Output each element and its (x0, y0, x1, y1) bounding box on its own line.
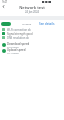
staticText: Wi-Fi connection ok (7, 28, 31, 32)
staticText: All good (22, 22, 32, 25)
staticText: Network test (0, 5, 64, 10)
staticText: 24 Jan 2024 (0, 10, 64, 14)
staticText: 24.6 Mbps (7, 45, 19, 48)
staticText: See details (39, 22, 55, 26)
button[interactable]: Signal strength good (0, 31, 64, 35)
staticText: Upload speed (7, 48, 26, 52)
button[interactable]: Download speed (0, 42, 64, 48)
staticText: DNS resolution ok (7, 36, 29, 40)
button[interactable]: Back (1, 4, 6, 9)
button[interactable]: See details (39, 22, 55, 26)
staticText: Download speed (7, 42, 30, 46)
button[interactable]: Wi-Fi connection ok (0, 27, 64, 31)
staticText: 9:41 (2, 0, 8, 4)
button[interactable]: Upload speed (0, 48, 64, 54)
staticText: Signal strength good (7, 32, 33, 36)
staticText: 12.1 Mbps (7, 51, 19, 54)
button[interactable]: DNS resolution ok (0, 35, 64, 39)
